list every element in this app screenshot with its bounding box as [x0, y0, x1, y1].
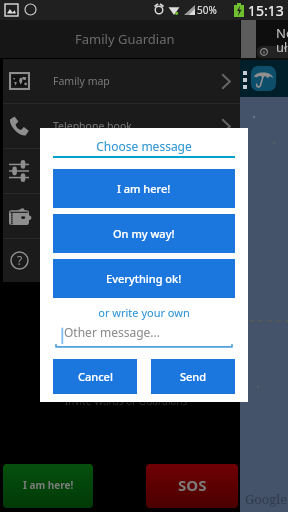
button[interactable]: On my way! — [53, 214, 235, 253]
button[interactable]: Other message... — [53, 322, 235, 348]
staticText: Family map — [53, 74, 110, 88]
staticText: Invite Wards or Guardians — [0, 394, 252, 408]
staticText: or write your own — [40, 305, 248, 320]
staticText: Settings — [53, 164, 93, 178]
button[interactable]: Family map — [3, 59, 240, 103]
staticText: On my way! — [113, 226, 175, 241]
staticText: 50% — [197, 3, 217, 17]
staticText: ? — [17, 252, 23, 268]
staticText: Other message... — [64, 324, 160, 340]
staticText: Choose message — [40, 138, 248, 154]
staticText: Telephone book — [53, 119, 132, 133]
button[interactable]: Send — [151, 359, 235, 394]
button[interactable]: ? — [3, 239, 240, 282]
staticText: Google — [245, 490, 288, 508]
staticText: I am here! — [117, 181, 171, 196]
button[interactable]: Telephone book — [3, 104, 240, 148]
button[interactable]: SOS — [146, 464, 238, 508]
staticText: uła — [276, 38, 288, 56]
button[interactable]: I am here! — [53, 169, 235, 208]
staticText: Help — [53, 254, 76, 268]
staticText: 15:13 — [248, 1, 284, 20]
staticText: Family Guardian — [75, 30, 175, 48]
staticText: Payments — [53, 209, 102, 223]
button[interactable]: Weather — [251, 66, 276, 91]
button[interactable]: I am here! — [3, 464, 93, 508]
button[interactable]: Everything ok! — [53, 259, 235, 298]
staticText: Send — [180, 369, 207, 384]
button[interactable]: Payments — [3, 194, 240, 238]
staticText: Everything ok! — [106, 271, 182, 286]
staticText: No — [276, 24, 288, 42]
staticText: Cancel — [78, 369, 113, 384]
staticText: SOS — [178, 475, 207, 495]
button[interactable]: Settings — [3, 149, 240, 193]
staticText: I am here! — [23, 478, 74, 492]
button[interactable]: Cancel — [53, 359, 137, 394]
